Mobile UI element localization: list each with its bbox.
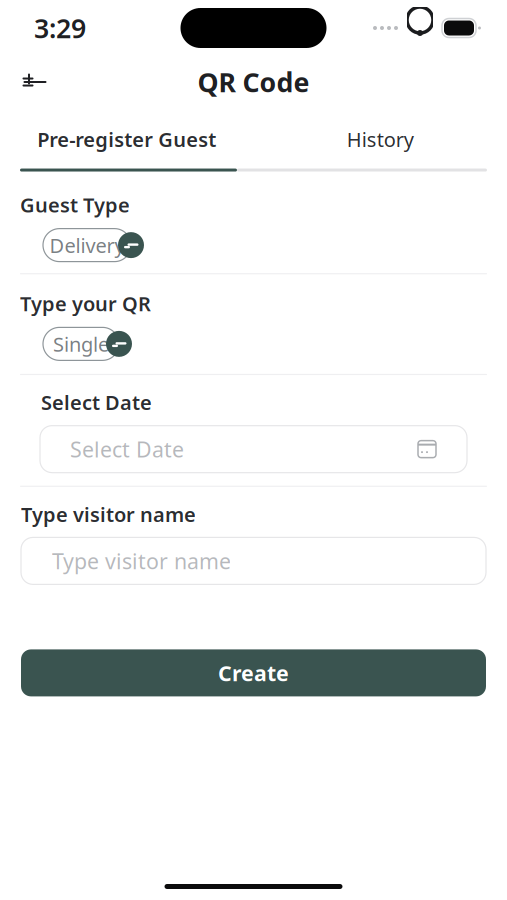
staticText: Type visitor name: [21, 501, 196, 527]
staticText: Delivery: [49, 232, 124, 258]
staticText: 3:29: [34, 10, 86, 46]
staticText: Pre-register Guest: [37, 126, 216, 153]
button[interactable]: Back: [8, 60, 62, 104]
staticText: Single: [53, 331, 109, 357]
button[interactable]: Create: [0, 584, 507, 696]
staticText: Type visitor name: [52, 547, 231, 575]
button[interactable]: Pre-register Guest: [0, 118, 253, 161]
staticText: Type your QR: [20, 290, 151, 317]
staticText: Create: [218, 659, 289, 687]
button[interactable]: History: [253, 118, 507, 161]
staticText: Select Date: [41, 389, 152, 416]
button[interactable]: Delivery: [30, 227, 144, 263]
staticText: QR Code: [197, 64, 309, 100]
button[interactable]: Single: [30, 326, 132, 362]
button[interactable]: Type visitor name: [0, 527, 507, 584]
staticText: History: [347, 126, 414, 153]
staticText: Select Date: [70, 435, 184, 463]
button[interactable]: Select Date: [0, 416, 507, 473]
staticText: Guest Type: [20, 192, 130, 218]
